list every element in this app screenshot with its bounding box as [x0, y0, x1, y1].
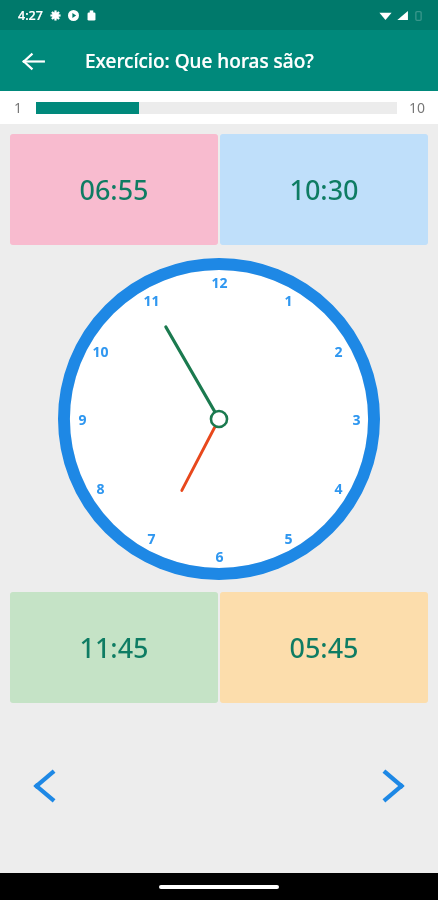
staticText: 12	[211, 273, 228, 292]
button[interactable]: 06:55	[10, 134, 218, 245]
staticText: 10	[409, 98, 426, 117]
staticText: 3	[352, 410, 361, 429]
button[interactable]: Previous	[12, 753, 78, 819]
staticText: 4	[334, 479, 343, 498]
staticText: 4:27	[18, 7, 43, 24]
staticText: 1	[14, 98, 23, 117]
button[interactable]: 11:45	[10, 592, 218, 703]
staticText: 10	[92, 342, 109, 361]
staticText: 9	[78, 410, 87, 429]
staticText: 5	[284, 529, 293, 548]
staticText: 1	[284, 291, 293, 310]
staticText: 6	[215, 547, 224, 566]
staticText: 2	[334, 342, 343, 361]
staticText: 7	[147, 529, 156, 548]
button[interactable]: 10:30	[220, 134, 428, 245]
staticText: 8	[96, 479, 105, 498]
staticText: 11	[143, 291, 160, 310]
staticText: Exercício: Que horas são?	[85, 48, 314, 74]
staticText: 11:45	[79, 629, 149, 666]
button[interactable]: Back	[10, 38, 56, 84]
staticText: 10:30	[289, 171, 359, 208]
button[interactable]: 05:45	[220, 592, 428, 703]
staticText: 05:45	[289, 629, 359, 666]
staticText: 06:55	[79, 171, 149, 208]
button[interactable]: Next	[360, 753, 426, 819]
